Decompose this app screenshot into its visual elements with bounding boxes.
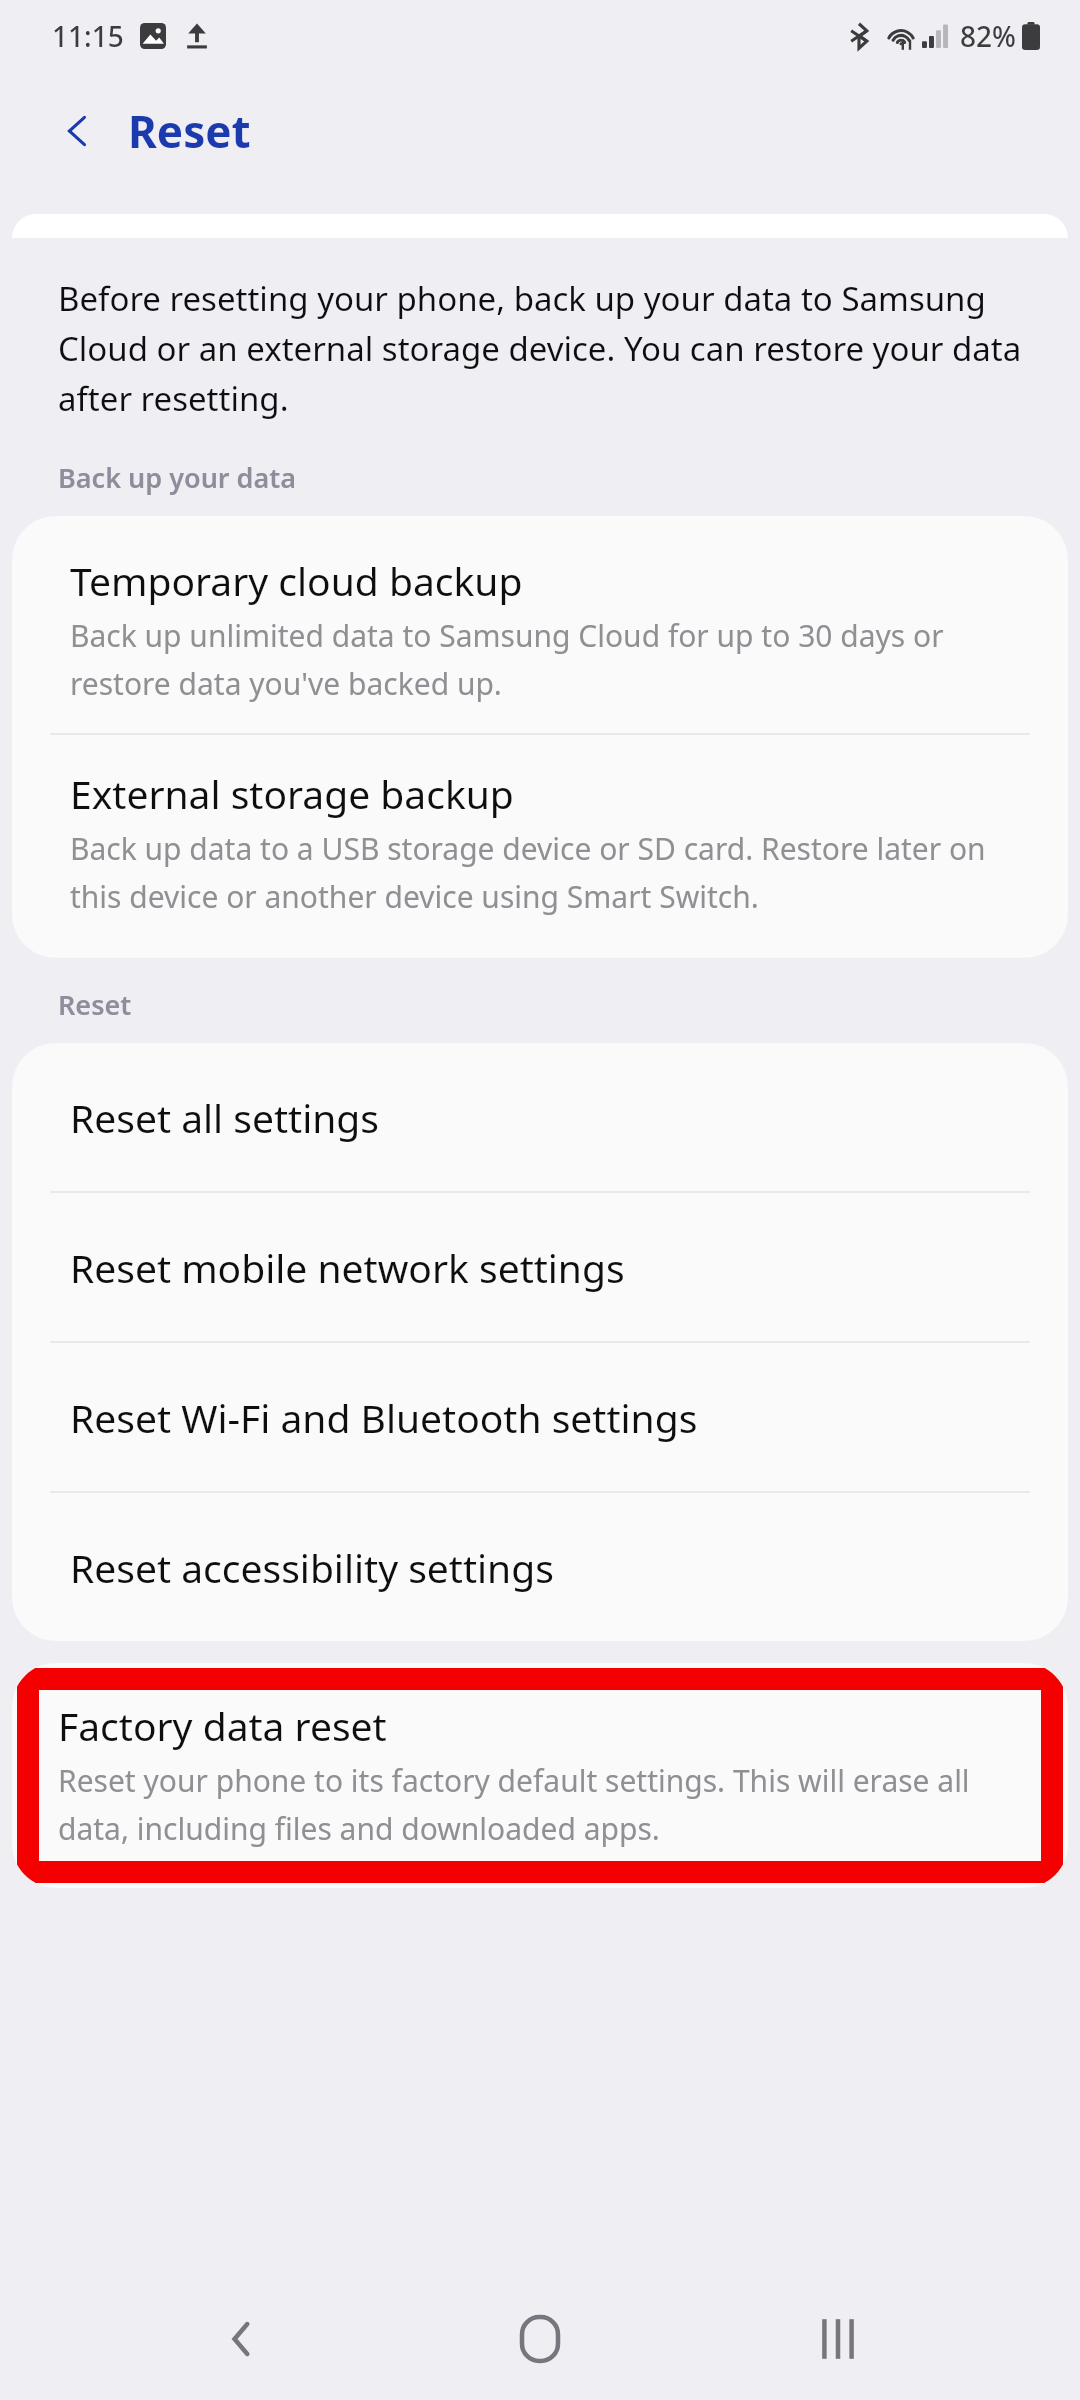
button[interactable]: Recent apps <box>782 2283 894 2395</box>
button[interactable]: Reset all settings <box>12 1043 1068 1191</box>
button[interactable]: Reset accessibility settings <box>12 1493 1068 1641</box>
staticText: Factory data reset <box>58 1699 387 1752</box>
staticText: Back up data to a USB storage device or … <box>70 828 1022 916</box>
button[interactable]: Reset mobile network settings <box>12 1193 1068 1341</box>
staticText: Reset <box>58 986 132 1023</box>
staticText: 82% <box>960 17 1016 55</box>
staticText: Temporary cloud backup <box>70 554 523 607</box>
staticText: Reset accessibility settings <box>70 1541 554 1594</box>
staticText: Reset Wi-Fi and Bluetooth settings <box>70 1391 698 1444</box>
button[interactable]: Temporary cloud backup <box>12 516 1068 733</box>
staticText: Before resetting your phone, back up you… <box>58 276 1024 421</box>
staticText: 11:15 <box>52 17 124 55</box>
button[interactable]: Factory data reset <box>12 1663 1068 1888</box>
button[interactable]: External storage backup <box>12 735 1068 958</box>
staticText: External storage backup <box>70 767 514 820</box>
staticText: Reset mobile network settings <box>70 1241 625 1294</box>
button[interactable]: Back <box>186 2283 298 2395</box>
staticText: Reset all settings <box>70 1091 379 1144</box>
staticText: Back up your data <box>58 459 297 496</box>
button[interactable]: Reset Wi-Fi and Bluetooth settings <box>12 1343 1068 1491</box>
button[interactable]: Back <box>48 101 108 161</box>
staticText: Reset your phone to its factory default … <box>58 1760 1022 1848</box>
button[interactable]: Home <box>484 2283 596 2395</box>
staticText: Reset <box>128 101 251 161</box>
staticText: Back up unlimited data to Samsung Cloud … <box>70 615 1022 703</box>
